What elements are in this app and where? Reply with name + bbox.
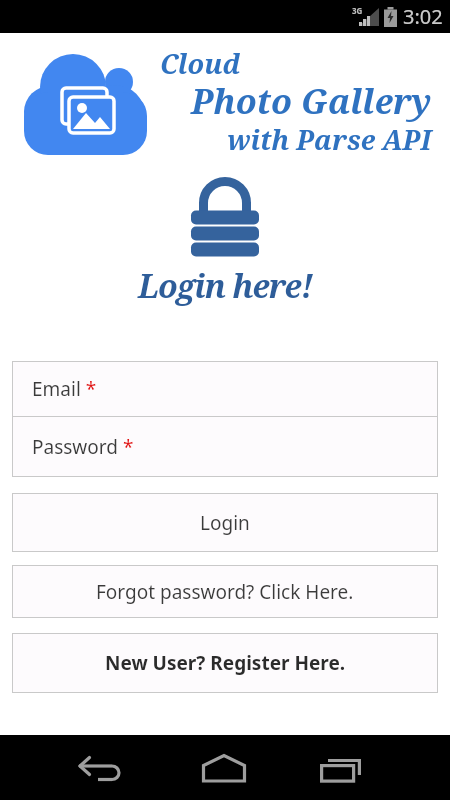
- button[interactable]: Password *: [12, 416, 438, 477]
- staticText: New User? Register Here.: [105, 650, 346, 676]
- button[interactable]: Email *: [12, 361, 438, 417]
- button[interactable]: [320, 754, 363, 783]
- staticText: Photo Gallery: [191, 78, 432, 124]
- staticText: Forgot password? Click Here.: [96, 579, 354, 605]
- staticText: 3:02: [403, 3, 443, 30]
- staticText: Cloud: [160, 45, 241, 82]
- staticText: Email *: [32, 376, 97, 402]
- button[interactable]: [202, 754, 246, 783]
- button[interactable]: Login: [12, 493, 438, 552]
- button[interactable]: Forgot password? Click Here.: [12, 565, 438, 618]
- staticText: with Parse API: [227, 121, 432, 158]
- staticText: Password *: [32, 434, 134, 460]
- staticText: 3G: [352, 5, 363, 16]
- staticText: Login: [200, 510, 250, 536]
- button[interactable]: [79, 753, 120, 783]
- staticText: Login here!: [138, 264, 313, 308]
- button[interactable]: New User? Register Here.: [12, 633, 438, 693]
